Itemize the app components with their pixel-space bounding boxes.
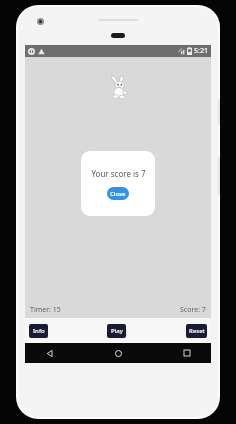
staticText: Play — [111, 327, 123, 335]
button[interactable]: Back — [41, 345, 57, 361]
button[interactable]: Reset — [186, 324, 207, 338]
staticText: Your score is 7 — [91, 168, 146, 179]
button[interactable]: Recents — [179, 345, 195, 361]
button[interactable]: Home — [110, 345, 126, 361]
staticText: Info — [33, 327, 45, 335]
staticText: Timer: 15 — [30, 305, 61, 315]
staticText: Score: 7 — [180, 305, 206, 315]
staticText: Close — [110, 190, 126, 198]
button[interactable]: Info — [29, 324, 48, 338]
button[interactable]: Close — [107, 187, 129, 200]
staticText: Reset — [189, 327, 205, 335]
staticText: 5:21 — [194, 46, 208, 56]
button[interactable]: Play — [107, 324, 126, 338]
